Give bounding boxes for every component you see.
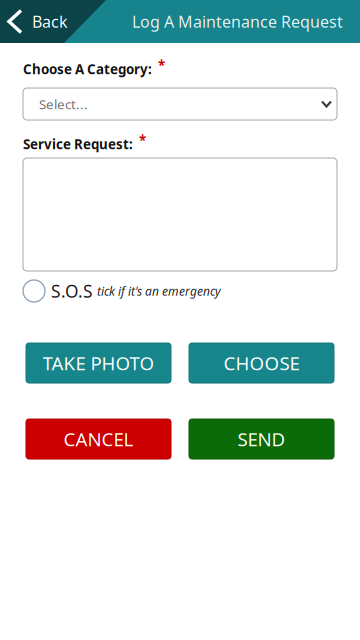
- button[interactable]: Back: [0, 0, 100, 43]
- button[interactable]: CANCEL: [26, 419, 171, 459]
- staticText: SEND: [237, 427, 285, 451]
- staticText: tick if it's an emergency: [97, 283, 221, 299]
- staticText: Select...: [39, 95, 88, 113]
- staticText: TAKE PHOTO: [42, 351, 154, 375]
- staticText: S.O.S: [51, 279, 93, 302]
- staticText: Service Request:: [23, 135, 133, 153]
- button[interactable]: SEND: [189, 419, 334, 459]
- staticText: CANCEL: [63, 427, 133, 451]
- staticText: *: [139, 131, 146, 149]
- staticText: Choose A Category:: [23, 60, 152, 78]
- staticText: *: [158, 56, 165, 74]
- button[interactable]: TAKE PHOTO: [26, 343, 171, 383]
- staticText: Back: [32, 11, 68, 32]
- button[interactable]: CHOOSE: [189, 343, 334, 383]
- button[interactable]: Select...: [23, 88, 337, 120]
- button[interactable]: S.O.S: [23, 279, 337, 303]
- staticText: Log A Maintenance Request: [132, 11, 343, 32]
- staticText: CHOOSE: [223, 351, 299, 375]
